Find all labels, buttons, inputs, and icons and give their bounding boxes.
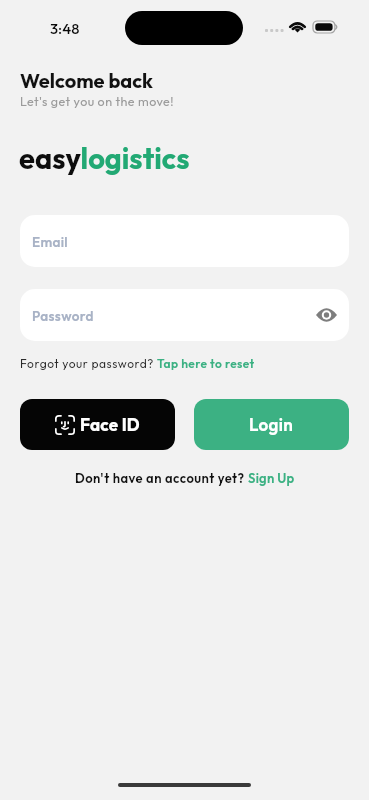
button[interactable]: Login (194, 399, 349, 450)
staticText: Email (32, 233, 68, 250)
staticText: Face ID (80, 414, 140, 435)
staticText: Let's get you on the move! (20, 93, 174, 109)
button[interactable]: Show password (312, 301, 340, 329)
button[interactable]: Sign Up (248, 470, 295, 486)
button[interactable]: Tap here to reset (157, 356, 255, 371)
staticText: Welcome back (20, 68, 154, 93)
staticText: Sign Up (248, 470, 295, 486)
staticText: 3:48 (50, 19, 80, 38)
staticText: Login (249, 414, 294, 435)
button[interactable]: Password (20, 289, 349, 341)
staticText: Forgot your password? (20, 356, 157, 371)
button[interactable]: Email (20, 215, 349, 267)
staticText: Tap here to reset (157, 356, 255, 371)
staticText: Don't have an account yet? (75, 470, 248, 486)
staticText: Password (32, 307, 94, 324)
button[interactable]: Face ID (20, 399, 175, 450)
staticText: easylogistics (19, 140, 190, 177)
